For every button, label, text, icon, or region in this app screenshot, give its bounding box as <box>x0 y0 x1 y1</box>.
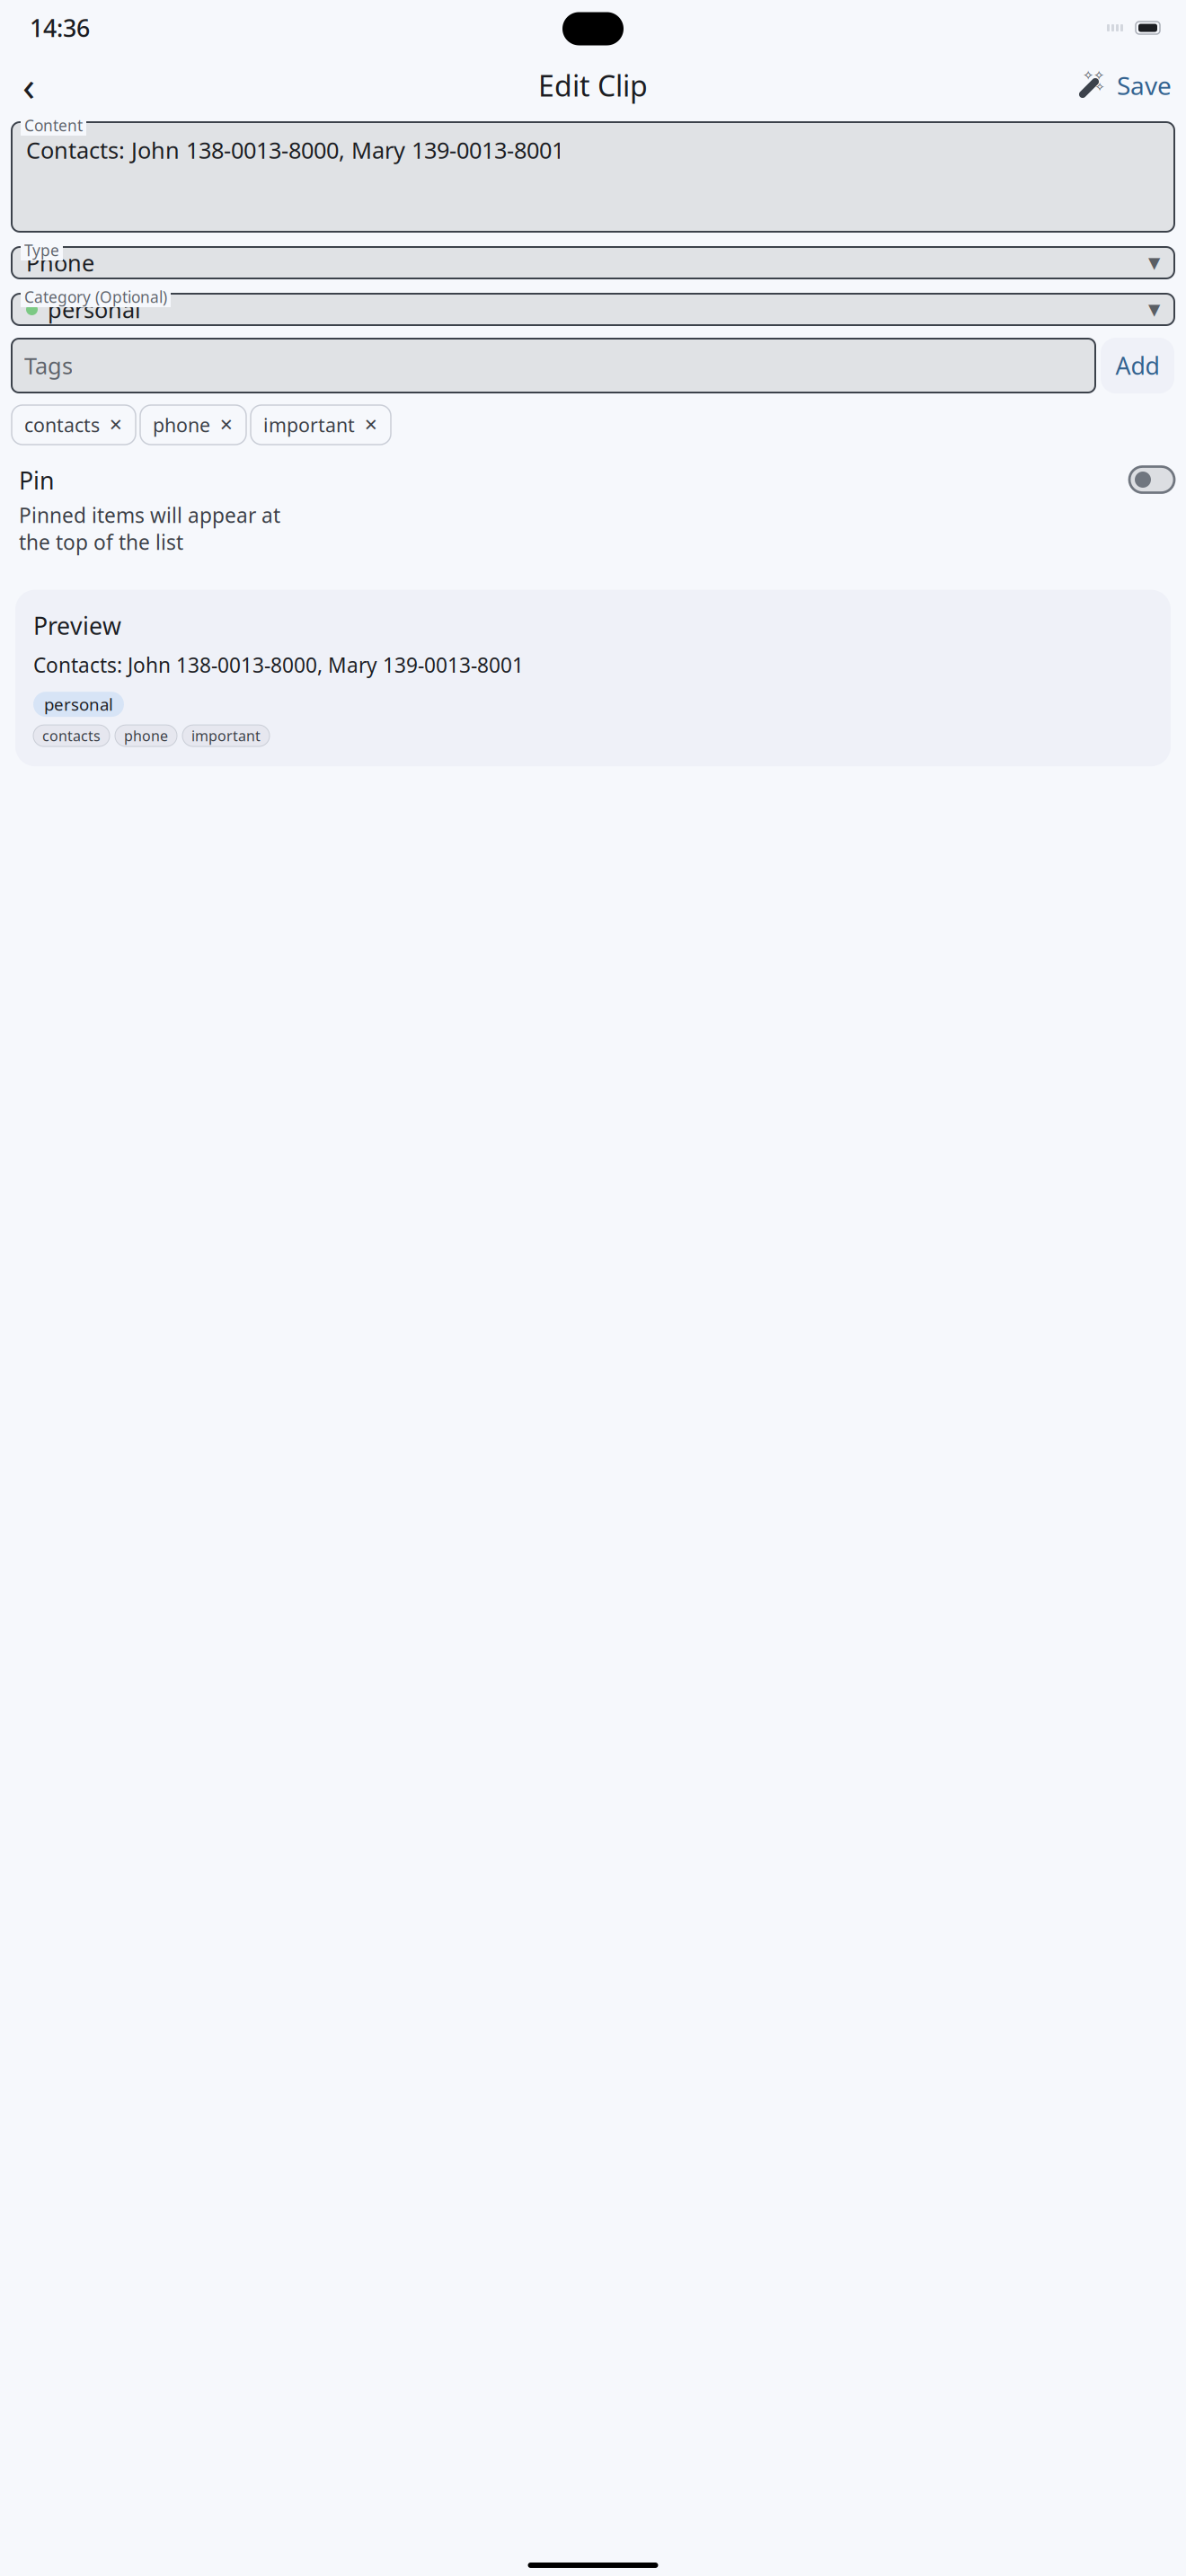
staticText: contacts <box>24 412 100 438</box>
staticText: important <box>191 726 261 745</box>
staticText: Edit Clip <box>538 66 648 104</box>
staticText: Contacts: John 138-0013-8000, Mary 139-0… <box>33 651 524 678</box>
staticText: ✧ <box>1095 80 1105 94</box>
staticText: Contacts: John 138-0013-8000, Mary 139-0… <box>26 135 564 165</box>
button[interactable]: Pin toggle <box>1129 464 1174 495</box>
button[interactable]: contacts <box>12 405 136 445</box>
staticText: ✕ <box>219 415 234 434</box>
staticText: Type <box>24 240 59 260</box>
staticText: contacts <box>42 726 101 745</box>
staticText: Category (Optional) <box>24 287 167 307</box>
staticText: ✧ <box>1083 68 1093 83</box>
staticText: ‹ <box>22 58 35 112</box>
staticText: Add <box>1115 350 1159 381</box>
button[interactable]: important <box>251 405 391 445</box>
staticText: important <box>263 412 355 438</box>
staticText: Preview <box>33 610 121 641</box>
staticText: ✕ <box>109 415 123 434</box>
staticText: ✧ <box>1093 68 1104 83</box>
staticText: personal <box>48 294 141 325</box>
staticText: Phone <box>26 248 94 278</box>
staticText: phone <box>153 412 210 438</box>
staticText: ▼ <box>1148 254 1160 272</box>
staticText: ✕ <box>364 415 378 434</box>
staticText: Tags <box>24 350 73 381</box>
staticText: ▼ <box>1148 301 1160 318</box>
staticText: Pin <box>19 464 54 496</box>
staticText: phone <box>124 726 168 745</box>
staticText: Pinned items will appear at the top of t… <box>19 502 280 556</box>
staticText: personal <box>44 693 113 715</box>
button[interactable]: phone <box>140 405 246 445</box>
staticText: Content <box>24 115 83 136</box>
staticText: 14:36 <box>30 12 90 44</box>
button[interactable]: Save <box>1111 69 1177 102</box>
button[interactable]: Add <box>1101 338 1174 393</box>
button[interactable]: Back <box>9 66 49 105</box>
staticText: Save <box>1117 69 1172 102</box>
button[interactable]: Enhance <box>1072 66 1111 105</box>
